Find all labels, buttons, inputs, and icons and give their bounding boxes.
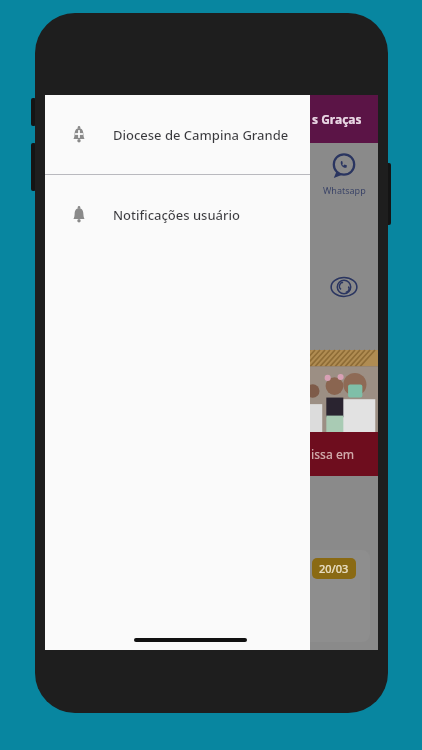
- button[interactable]: Site: [310, 273, 378, 301]
- other: Whatsapp: [329, 151, 359, 181]
- staticText: issa em: [311, 446, 355, 462]
- button[interactable]: Notificações usuário: [45, 175, 310, 254]
- staticText: Notificações usuário: [113, 206, 240, 224]
- staticText: 20/03: [319, 561, 349, 576]
- staticText: s Graças: [312, 111, 362, 127]
- button[interactable]: Whatsapp: [310, 147, 378, 200]
- button[interactable]: Diocese de Campina Grande: [45, 95, 310, 174]
- button[interactable]: 20/03: [302, 550, 370, 642]
- staticText: Whatsapp: [323, 184, 366, 196]
- staticText: Diocese de Campina Grande: [113, 126, 289, 144]
- other: Site: [330, 273, 358, 301]
